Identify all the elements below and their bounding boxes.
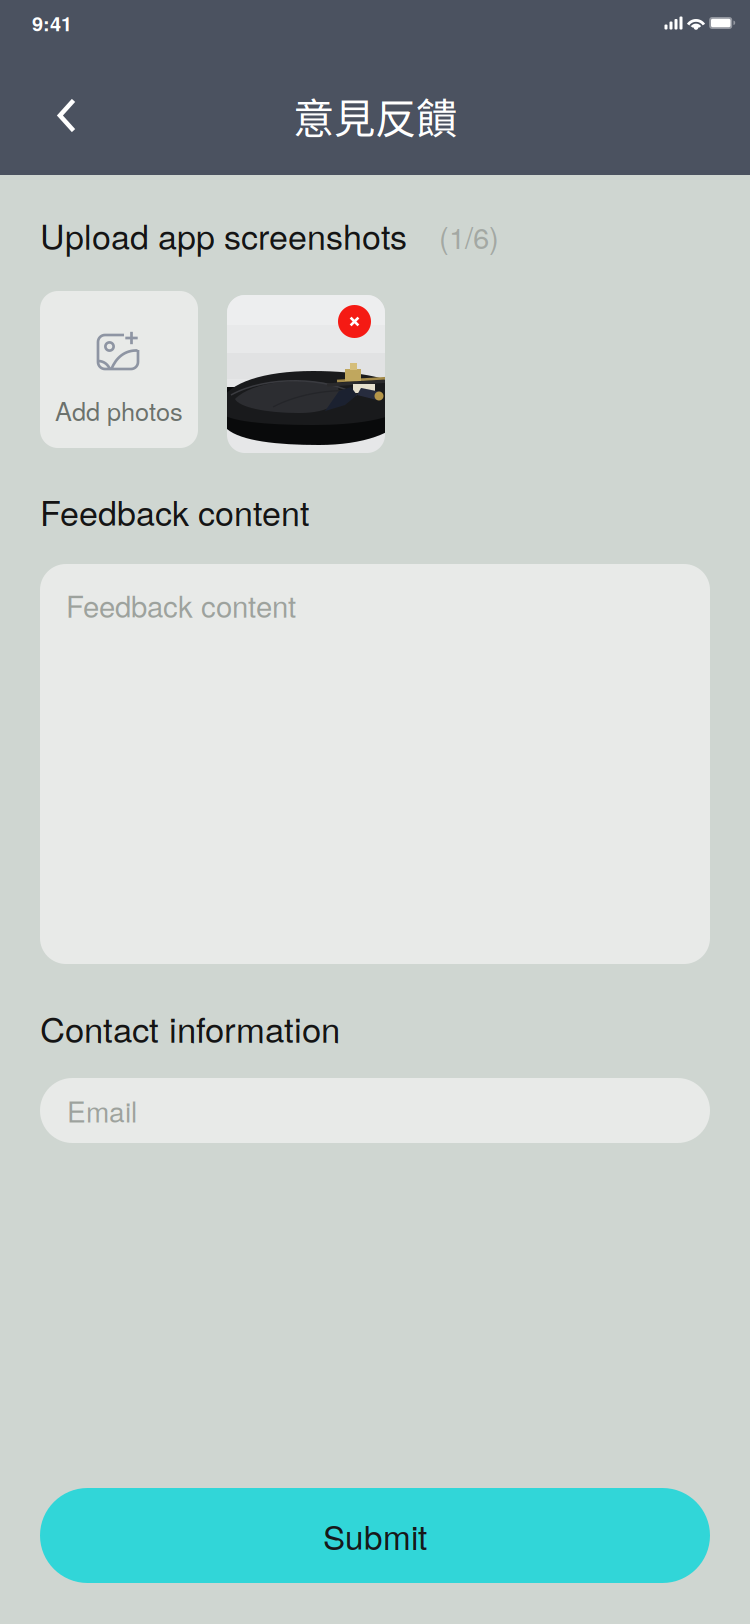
- staticText: Email: [67, 1090, 137, 1131]
- button[interactable]: Add photos: [40, 291, 198, 448]
- staticText: Submit: [323, 1512, 427, 1559]
- staticText: (1/6): [439, 215, 499, 257]
- button[interactable]: Remove photo: [338, 291, 385, 338]
- staticText: 9:41: [32, 9, 72, 37]
- staticText: Feedback content: [66, 584, 296, 626]
- staticText: Feedback content: [40, 487, 309, 536]
- button[interactable]: Submit: [40, 1488, 710, 1583]
- staticText: 意見反饋: [293, 86, 457, 145]
- button[interactable]: Back: [37, 84, 97, 146]
- staticText: Upload app screenshots: [40, 211, 407, 259]
- staticText: Contact information: [40, 1003, 340, 1053]
- staticText: Add photos: [55, 392, 183, 428]
